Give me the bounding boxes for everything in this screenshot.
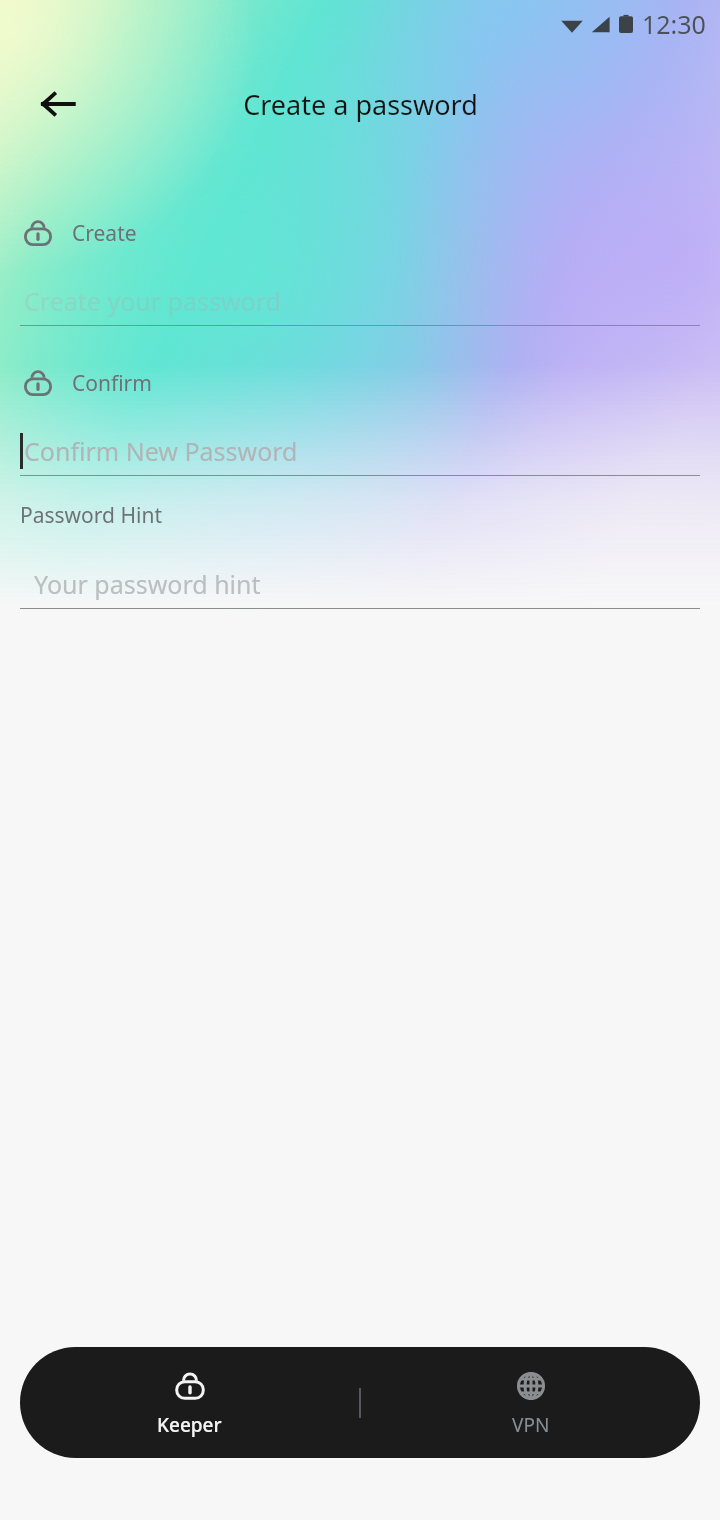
button[interactable]: Keeper [20,1355,359,1450]
staticText: Confirm New Password [24,434,298,468]
staticText: Confirm [72,369,152,398]
button[interactable]: Create your password [20,277,700,325]
staticText: Create your password [24,284,281,318]
button[interactable]: Your password hint [20,560,700,608]
staticText: Create a password [243,86,478,123]
staticText: Keeper [157,1412,222,1438]
staticText: Password Hint [20,501,162,530]
staticText: 12:30 [642,7,706,41]
staticText: VPN [512,1412,550,1438]
button[interactable]: Confirm New Password [20,427,700,475]
staticText: Your password hint [34,567,261,601]
button[interactable]: VPN [361,1355,700,1450]
button[interactable]: Back [34,80,82,128]
staticText: Create [72,219,137,248]
